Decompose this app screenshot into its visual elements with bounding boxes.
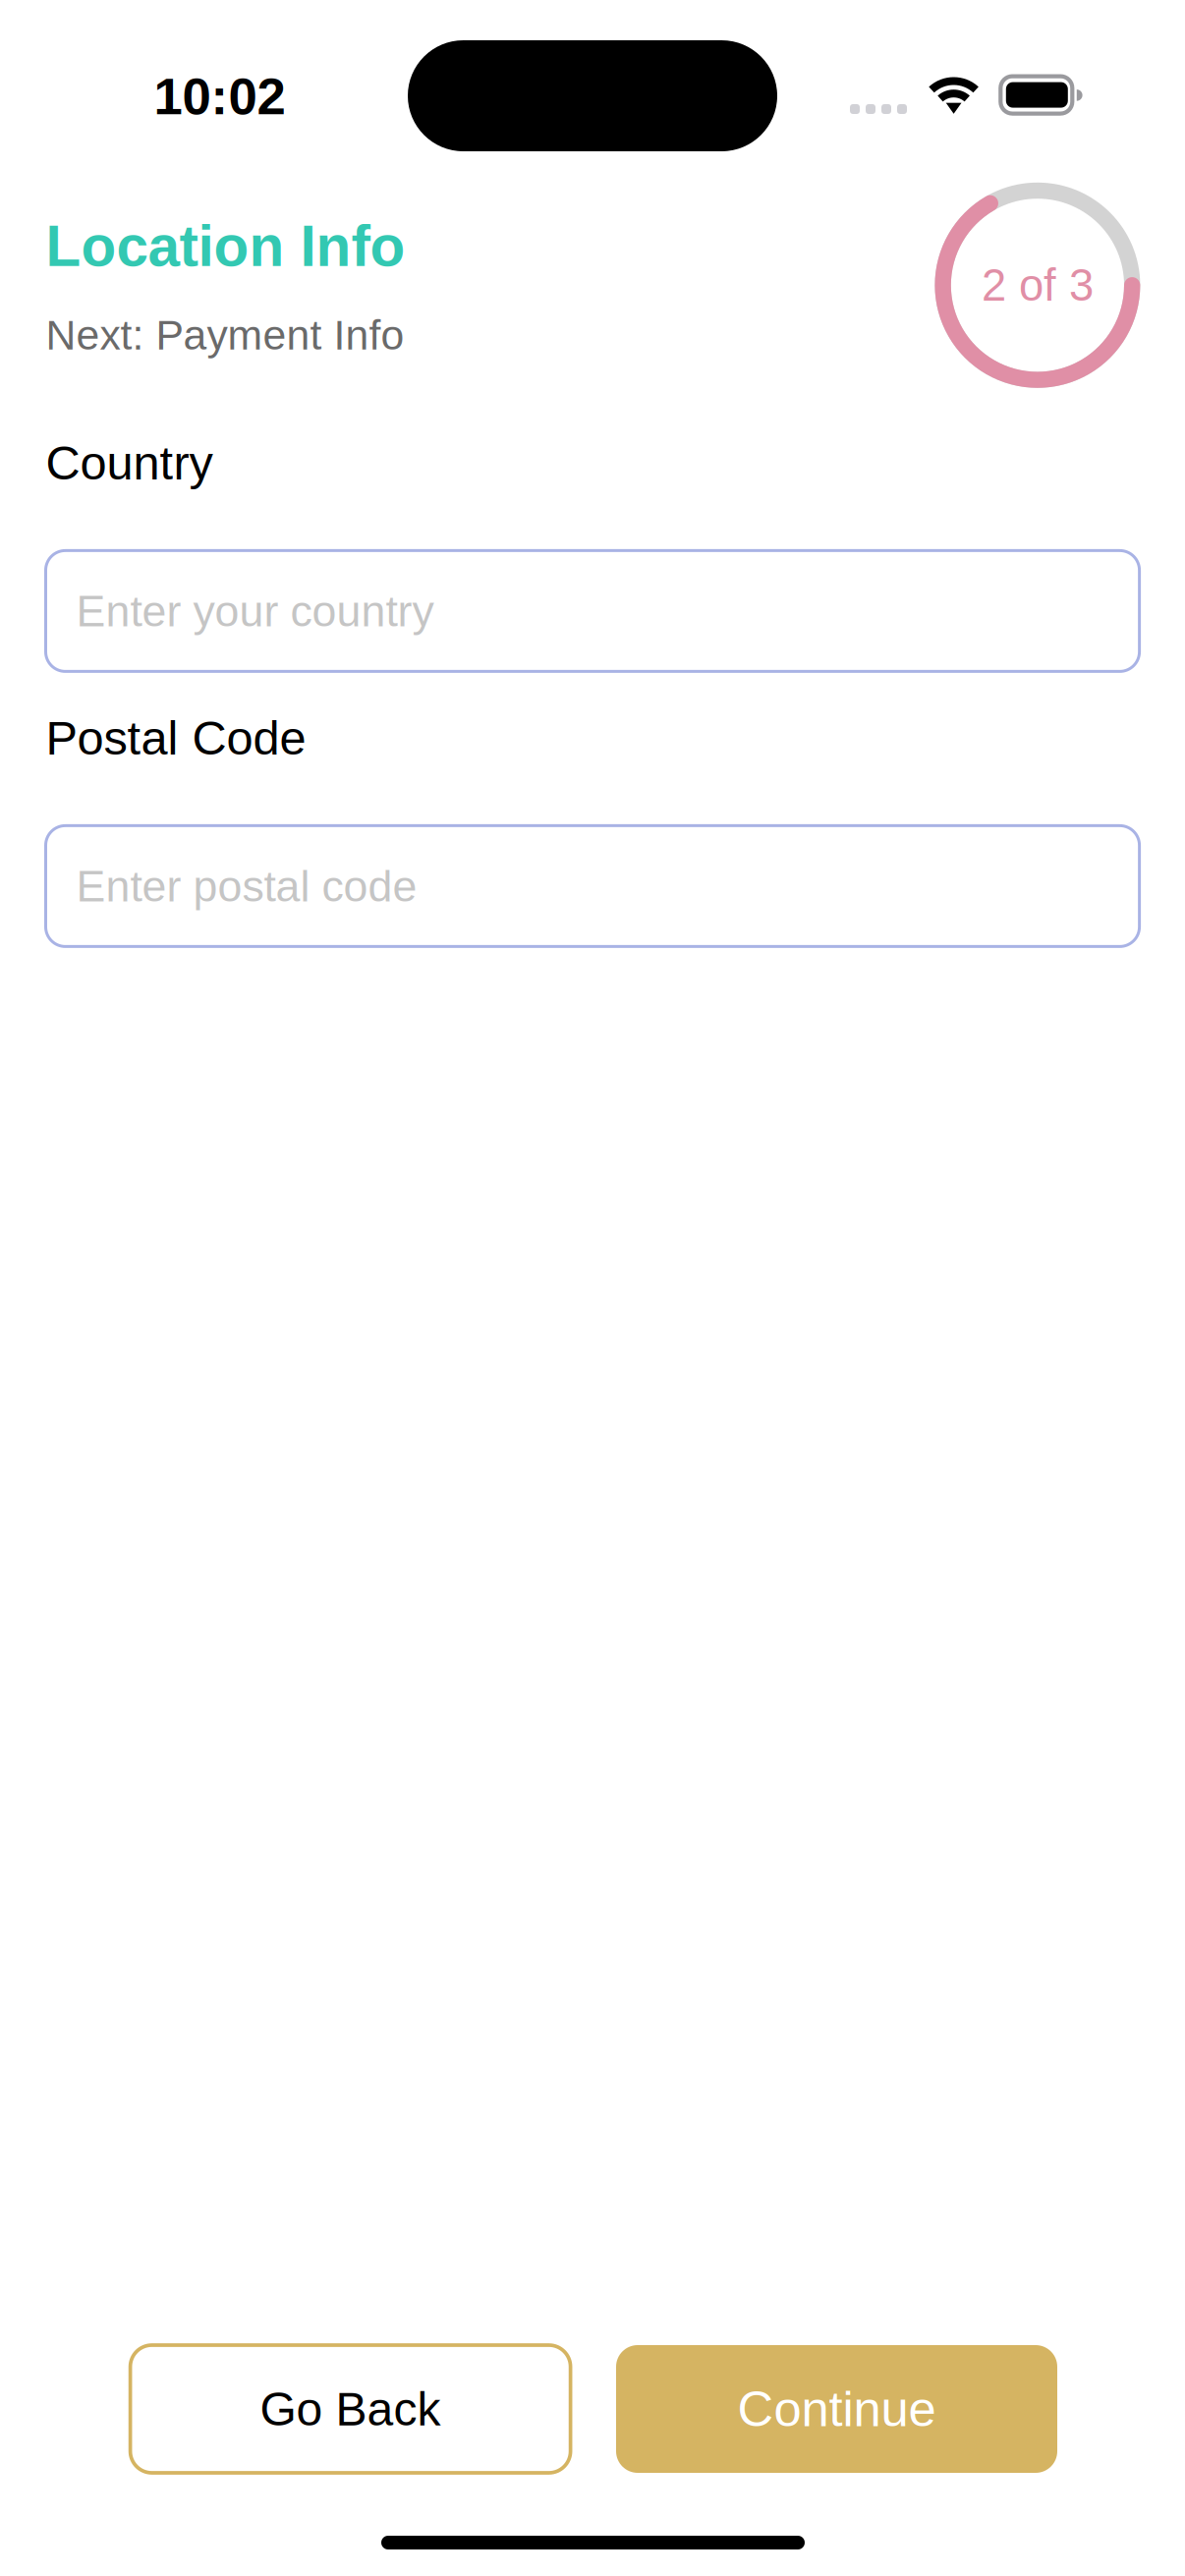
button[interactable]: Enter your country xyxy=(46,551,1139,671)
staticText: Enter postal code xyxy=(76,862,417,911)
staticText: 2 of 3 xyxy=(982,260,1094,310)
staticText: Enter your country xyxy=(76,586,434,635)
staticText: Country xyxy=(46,436,213,490)
button[interactable]: Go Back xyxy=(130,2345,570,2473)
staticText: 10:02 xyxy=(154,67,285,125)
button[interactable]: Continue xyxy=(616,2345,1057,2473)
staticText: Location Info xyxy=(46,214,405,278)
staticText: Go Back xyxy=(260,2383,441,2435)
staticText: Next: Payment Info xyxy=(46,311,404,358)
staticText: Continue xyxy=(737,2381,936,2437)
staticText: Postal Code xyxy=(46,711,306,765)
button[interactable]: Enter postal code xyxy=(46,826,1139,946)
